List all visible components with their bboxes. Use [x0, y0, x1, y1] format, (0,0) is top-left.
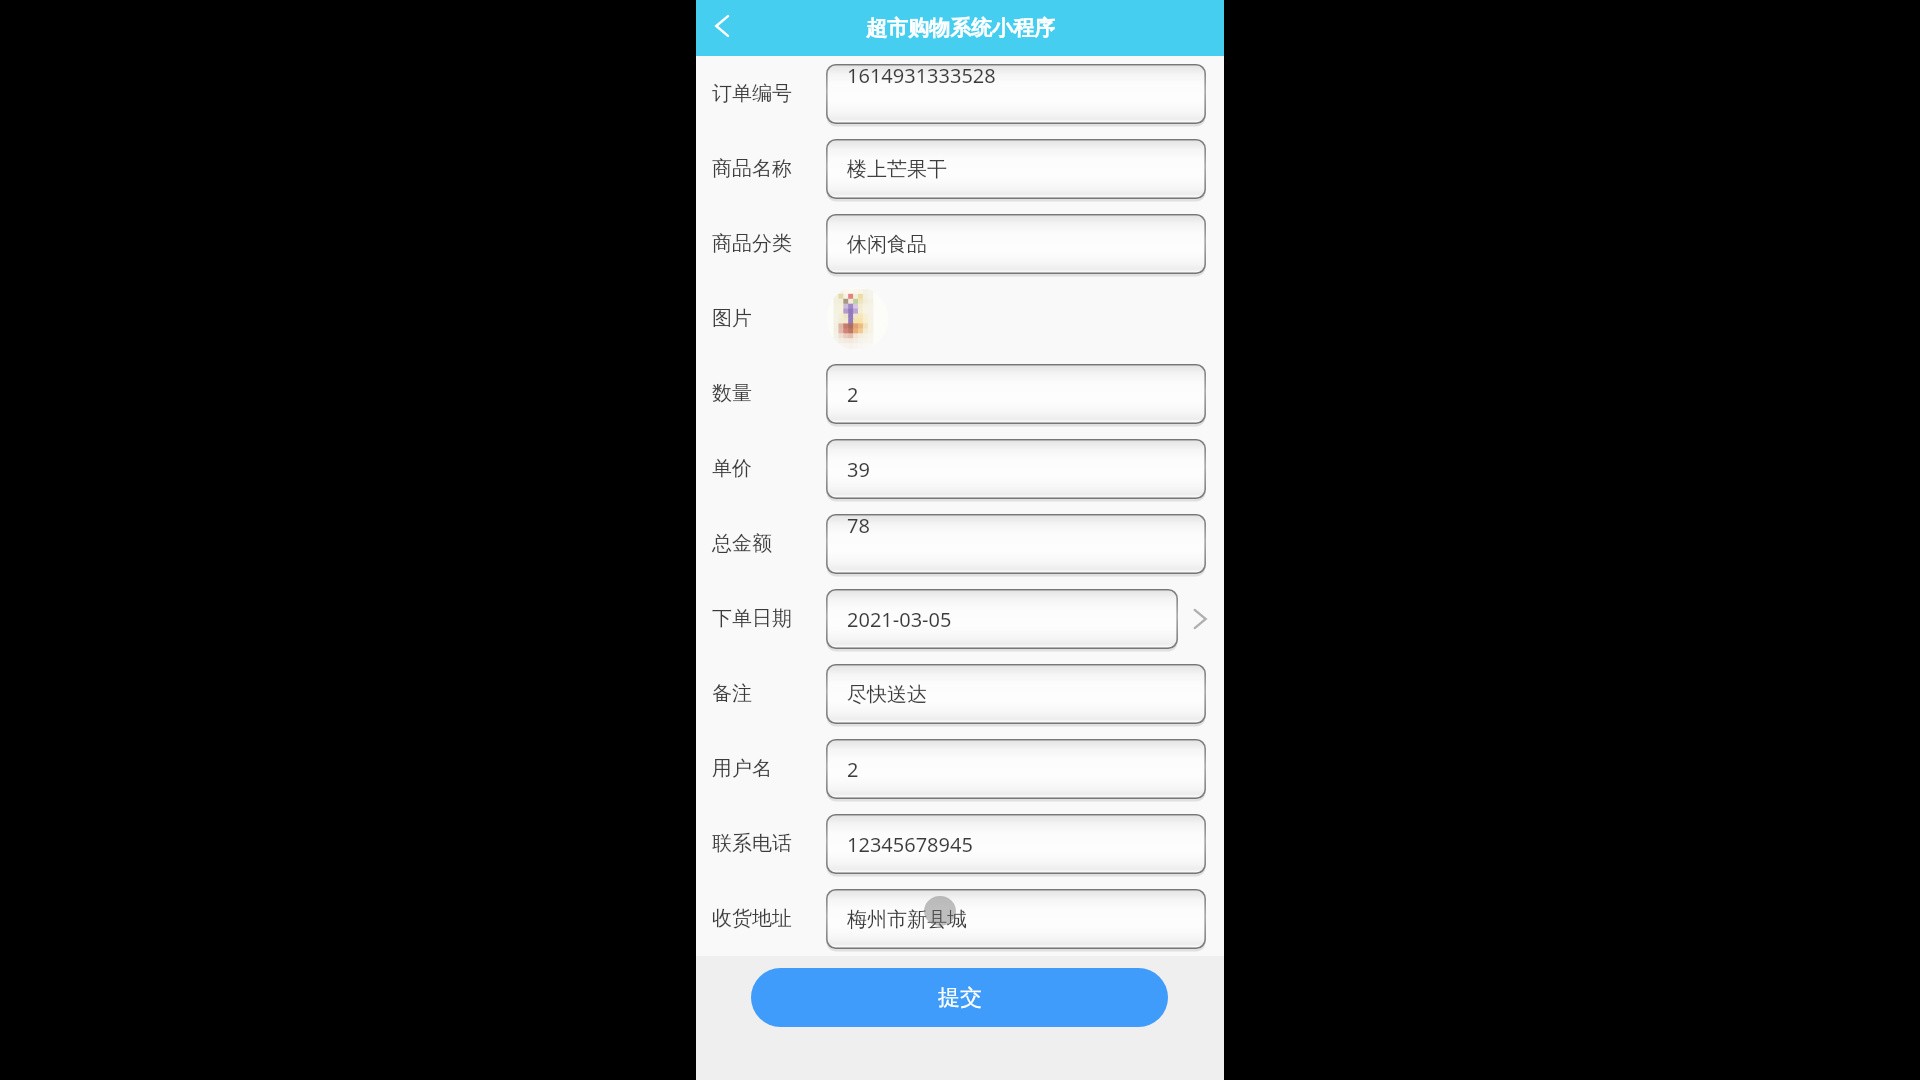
button[interactable]: Back — [701, 7, 743, 49]
staticText: 提交 — [938, 984, 982, 1012]
staticText: 下单日期 — [712, 606, 826, 631]
button[interactable]: Pick date — [1178, 581, 1224, 656]
button[interactable]: 休闲食品 — [826, 214, 1206, 274]
staticText: 联系电话 — [712, 831, 826, 856]
staticText: 商品分类 — [712, 231, 826, 256]
staticText: 39 — [847, 456, 870, 483]
staticText: 数量 — [712, 381, 826, 406]
staticText: 超市购物系统小程序 — [866, 15, 1055, 41]
staticText: 备注 — [712, 681, 826, 706]
button[interactable]: 2 — [826, 739, 1206, 799]
staticText: 图片 — [712, 306, 826, 331]
staticText: 订单编号 — [712, 81, 826, 106]
staticText: 商品名称 — [712, 156, 826, 181]
staticText: 楼上芒果干 — [847, 157, 947, 182]
button[interactable]: 尽快送达 — [826, 664, 1206, 724]
button[interactable]: 梅州市新县城 — [826, 889, 1206, 949]
button[interactable]: 2021-03-05 — [826, 589, 1178, 649]
staticText: 总金额 — [712, 531, 826, 556]
staticText: 2 — [847, 381, 859, 408]
staticText: 1614931333528 — [847, 62, 996, 89]
staticText: 2 — [847, 756, 859, 783]
staticText: 休闲食品 — [847, 232, 927, 257]
staticText: 用户名 — [712, 756, 826, 781]
button[interactable]: 楼上芒果干 — [826, 139, 1206, 199]
staticText: 梅州市新县城 — [847, 907, 967, 932]
button[interactable]: 2 — [826, 364, 1206, 424]
staticText: 收货地址 — [712, 906, 826, 931]
button[interactable]: 39 — [826, 439, 1206, 499]
button[interactable]: 78 — [826, 514, 1206, 574]
staticText: 78 — [847, 512, 870, 539]
staticText: 2021-03-05 — [847, 606, 952, 633]
button[interactable]: 提交 — [751, 968, 1168, 1027]
button[interactable]: 12345678945 — [826, 814, 1206, 874]
staticText: 单价 — [712, 456, 826, 481]
staticText: 尽快送达 — [847, 682, 927, 707]
button[interactable]: 1614931333528 — [826, 64, 1206, 124]
staticText: 12345678945 — [847, 831, 973, 858]
